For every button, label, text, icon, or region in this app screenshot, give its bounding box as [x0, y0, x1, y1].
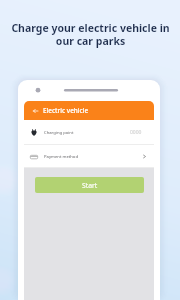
button[interactable]: Charging point	[24, 120, 154, 145]
staticText: Start	[82, 181, 98, 190]
other: Back	[33, 108, 38, 114]
staticText: 0000	[130, 129, 142, 136]
staticText: Electric vehicle	[43, 106, 89, 115]
button[interactable]: Start	[35, 177, 144, 193]
staticText: Charging point	[44, 130, 74, 136]
button[interactable]: Back	[24, 101, 154, 120]
other: Open payment method	[142, 154, 147, 159]
staticText: Charge your electric vehicle in our car …	[9, 21, 172, 48]
staticText: Payment method	[44, 154, 78, 160]
button[interactable]: Payment method	[24, 145, 154, 168]
